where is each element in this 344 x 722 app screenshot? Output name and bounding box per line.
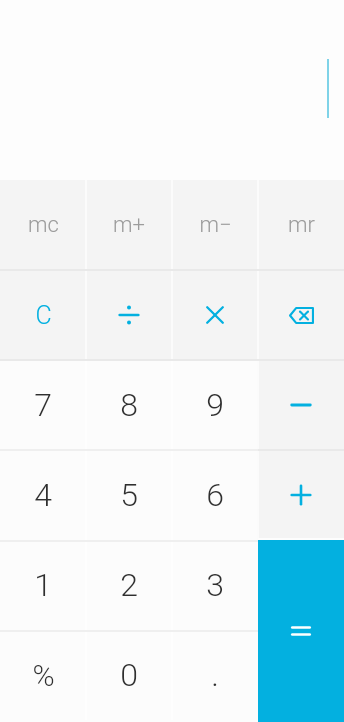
staticText: m− [199,212,232,238]
staticText: 5 [120,476,138,514]
staticText: mr [288,212,315,238]
button[interactable]: Backspace [258,270,344,360]
staticText: 4 [34,476,52,514]
staticText: 0 [120,656,138,694]
button[interactable]: Minus [258,360,344,450]
staticText: C [35,301,52,330]
button[interactable]: 7 [0,360,86,450]
button[interactable]: Equals [258,540,344,722]
button[interactable]: mr [258,180,344,270]
staticText: 2 [120,566,138,604]
button[interactable]: 1 [0,540,86,630]
staticText: 3 [206,566,224,604]
button[interactable]: 2 [86,540,172,630]
staticText: 1 [34,566,52,604]
staticText: 6 [206,476,224,514]
staticText: m+ [113,212,145,238]
button[interactable]: % [0,630,86,720]
button[interactable]: 4 [0,450,86,540]
button[interactable]: 9 [172,360,258,450]
staticText: 8 [120,386,138,424]
button[interactable]: 3 [172,540,258,630]
button[interactable]: Divide [86,270,172,360]
button[interactable]: . [172,630,258,720]
button[interactable]: 0 [86,630,172,720]
button[interactable]: m+ [86,180,172,270]
button[interactable]: 5 [86,450,172,540]
button[interactable]: Multiply [172,270,258,360]
staticText: 9 [206,386,224,424]
button[interactable]: 8 [86,360,172,450]
button[interactable]: 6 [172,450,258,540]
staticText: . [211,656,219,694]
button[interactable]: mc [0,180,86,270]
button[interactable]: m− [172,180,258,270]
button[interactable]: Plus [258,450,344,540]
staticText: 7 [34,386,52,424]
button[interactable]: C [0,270,86,360]
staticText: % [32,658,55,693]
staticText: mc [28,212,59,238]
